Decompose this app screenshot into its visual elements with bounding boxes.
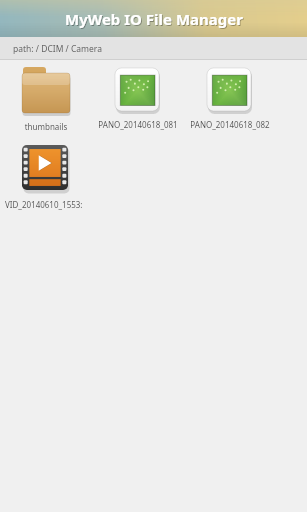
button[interactable]: thumbnails — [0, 60, 92, 132]
staticText: path: / DCIM / Camera — [13, 43, 102, 55]
button[interactable]: PANO_20140618_082 — [184, 60, 276, 130]
button[interactable]: PANO_20140618_081 — [92, 60, 184, 130]
other: Video file — [22, 145, 70, 193]
button[interactable]: Video file — [0, 145, 92, 210]
button[interactable]: path: / DCIM / Camera — [0, 37, 307, 60]
staticText: thumbnails — [0, 121, 92, 132]
staticText: MyWeb IO File Manager — [66, 10, 244, 30]
staticText: VID_20140610_1553: — [5, 199, 92, 210]
staticText: PANO_20140618_082 — [184, 119, 276, 130]
staticText: PANO_20140618_081 — [92, 119, 184, 130]
staticText: MyWeb IO File Manager — [65, 9, 243, 29]
